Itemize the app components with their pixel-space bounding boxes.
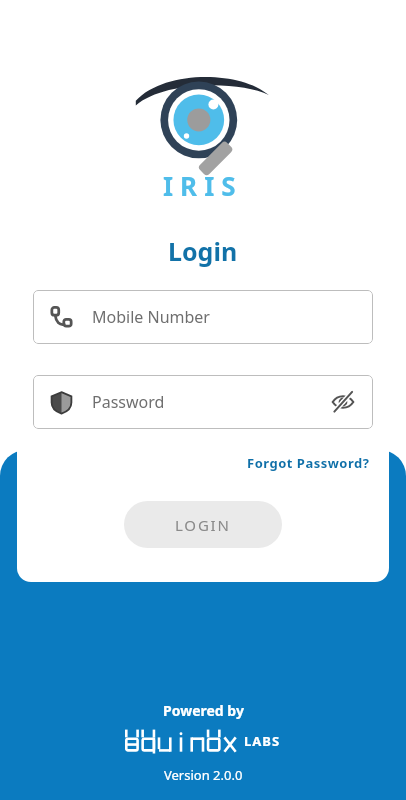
button[interactable]: Show password [327, 386, 359, 418]
staticText: Version 2.0.0 [164, 766, 243, 784]
button[interactable]: Mobile Number [33, 290, 373, 344]
button[interactable]: LOGIN [124, 501, 282, 548]
button[interactable]: Forgot Password? [244, 451, 373, 475]
staticText: Mobile Number [92, 306, 210, 328]
staticText: LABS [244, 732, 281, 750]
staticText: Forgot Password? [247, 454, 370, 472]
staticText: Password [92, 391, 165, 413]
staticText: LOGIN [175, 515, 231, 535]
button[interactable]: Password [33, 375, 373, 429]
staticText: IRIS [163, 168, 243, 203]
staticText: Powered by [163, 701, 244, 720]
staticText: Login [168, 234, 238, 268]
